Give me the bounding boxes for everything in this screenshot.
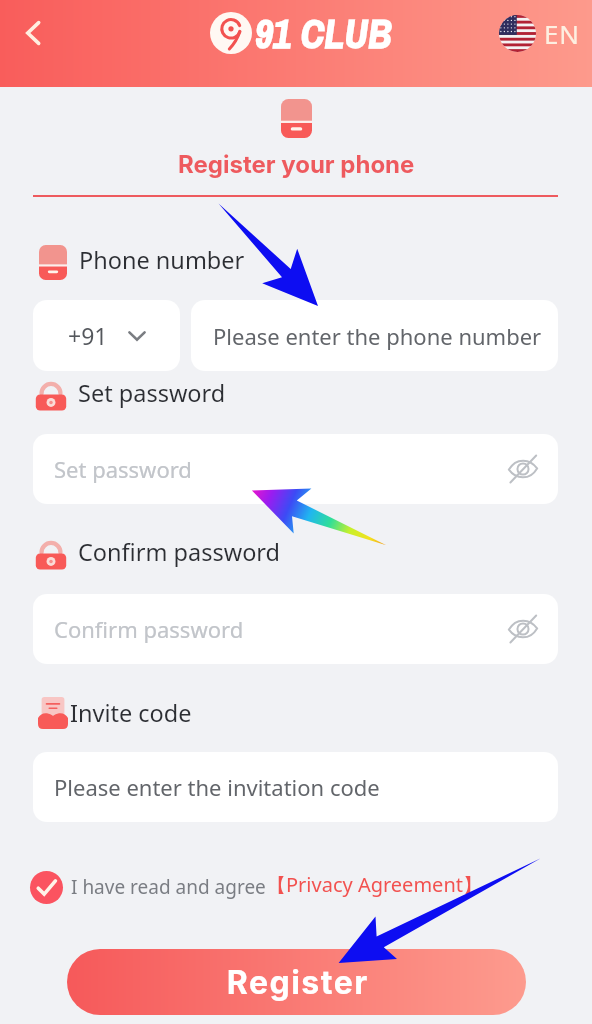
button[interactable]: Back <box>8 7 60 59</box>
staticText: EN <box>544 16 580 51</box>
button[interactable]: Please enter the phone number <box>191 300 558 371</box>
staticText: Please enter the phone number <box>213 321 542 351</box>
staticText: Register your phone <box>178 150 415 179</box>
button[interactable]: 【Privacy Agreement】 <box>266 871 483 898</box>
button[interactable]: Show password <box>502 608 544 650</box>
button[interactable]: Set password <box>33 434 558 504</box>
button[interactable]: Confirm password <box>33 594 558 664</box>
button[interactable]: EN <box>499 9 580 57</box>
button[interactable]: Register <box>67 949 526 1015</box>
staticText: Confirm password <box>78 536 281 568</box>
staticText: Confirm password <box>54 614 244 644</box>
staticText: I have read and agree <box>71 874 266 900</box>
button[interactable]: Show password <box>502 448 544 490</box>
staticText: Register <box>226 963 368 1002</box>
staticText: Set password <box>54 454 192 484</box>
staticText: Please enter the invitation code <box>54 772 380 802</box>
staticText: Phone number <box>79 244 245 276</box>
staticText: 91 CLUB <box>255 7 392 61</box>
staticText: Set password <box>78 377 226 409</box>
staticText: +91 <box>68 320 108 351</box>
staticText: Invite code <box>70 697 192 729</box>
button[interactable]: Please enter the invitation code <box>33 752 558 822</box>
staticText: 【Privacy Agreement】 <box>266 871 483 898</box>
button[interactable]: +91 <box>33 300 180 371</box>
button[interactable]: Agree to terms <box>28 869 65 906</box>
